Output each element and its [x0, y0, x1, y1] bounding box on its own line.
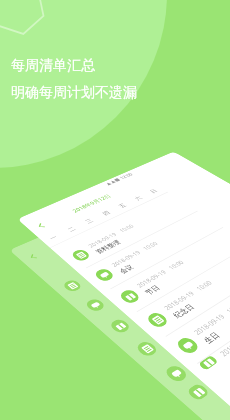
staticText: 2018-09-19 10:00: [217, 319, 230, 357]
staticText: 2018-09-19 10:00: [191, 300, 230, 336]
staticText: 明确每周计划不遗漏: [11, 84, 137, 102]
button[interactable]: [118, 274, 230, 370]
button[interactable]: [92, 257, 230, 346]
staticText: 五: [117, 202, 128, 209]
button[interactable]: [69, 241, 214, 323]
staticText: 2018-09-19 10:00: [109, 240, 160, 268]
button[interactable]: Back: [26, 217, 56, 235]
staticText: 三: [83, 217, 95, 225]
button[interactable]: 六: [124, 190, 152, 206]
staticText: 一: [48, 234, 59, 242]
staticText: 二: [66, 225, 77, 233]
button[interactable]: [29, 259, 61, 279]
button[interactable]: [177, 313, 230, 408]
staticText: 2018年9月12日: [70, 193, 113, 214]
button[interactable]: [47, 227, 189, 303]
button[interactable]: 五: [108, 197, 137, 214]
button[interactable]: [146, 293, 230, 397]
staticText: 会议: [117, 263, 136, 275]
button[interactable]: 2018-09-19 10:00: [56, 196, 197, 272]
staticText: 六: [133, 195, 144, 201]
button[interactable]: Back: [18, 248, 48, 266]
button[interactable]: 2018-09-19 10:00: [102, 227, 230, 316]
button[interactable]: [83, 235, 113, 253]
button[interactable]: 2018-09-19 10:00: [78, 211, 223, 293]
staticText: 节日: [143, 284, 162, 296]
button[interactable]: 2018-09-19 10:00: [189, 285, 230, 377]
staticText: 生日: [201, 330, 222, 345]
staticText: 每周清单汇总: [11, 57, 95, 75]
button[interactable]: 日: [139, 183, 167, 199]
staticText: 纪念日: [171, 302, 197, 320]
button[interactable]: [100, 228, 129, 245]
button[interactable]: 四: [91, 204, 121, 222]
button[interactable]: [116, 221, 144, 237]
staticText: 2018-09-19 10:00: [161, 279, 214, 311]
staticText: 资料整理: [93, 239, 122, 255]
button[interactable]: 二: [56, 220, 87, 239]
staticText: 2018-09-19 10:00: [86, 223, 135, 249]
button[interactable]: [66, 243, 96, 261]
button[interactable]: 2018-09-19 10:00: [157, 264, 230, 369]
staticText: 2018-09-19 10:00: [134, 258, 186, 289]
staticText: 四: [100, 210, 112, 217]
staticText: 日: [148, 188, 159, 194]
button[interactable]: 三: [74, 212, 104, 230]
staticText: 12:00: [118, 172, 134, 180]
button[interactable]: 2018-09-19 10:00: [128, 245, 230, 342]
button[interactable]: 一: [37, 228, 69, 248]
button[interactable]: [48, 251, 79, 270]
